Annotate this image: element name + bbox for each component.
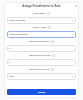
button[interactable]: Multiple Violations — [7, 31, 76, 38]
button[interactable]: 0 — [7, 59, 76, 66]
staticText: Submit — [38, 91, 46, 94]
button[interactable]: More info about Within Interval Value — [52, 54, 55, 57]
staticText: Within Interval Value — [29, 54, 51, 57]
button[interactable]: More info about Punishment — [47, 12, 50, 15]
staticText: Enforce After — [33, 26, 47, 29]
staticText: Assign Punishment to Rule — [22, 4, 61, 8]
button[interactable]: Notice Message — [7, 17, 76, 24]
button[interactable]: Submit — [7, 89, 76, 95]
staticText: Multiple Violations — [9, 33, 29, 36]
button[interactable]: 0 — [7, 45, 76, 52]
staticText: Punishment — [33, 12, 46, 15]
staticText: Notice Message — [9, 19, 26, 22]
button[interactable]: Days — [7, 73, 76, 80]
button[interactable]: More info about Minimum Violations — [51, 40, 54, 43]
staticText: Minimum Violations — [29, 40, 50, 43]
button[interactable]: Close dialog — [74, 4, 78, 8]
button[interactable]: More info about Within Interval Unit — [51, 68, 54, 71]
staticText: Within Interval Unit — [29, 68, 50, 71]
staticText: 0 — [9, 61, 11, 64]
staticText: 0 — [9, 47, 11, 50]
button[interactable]: More info about Enforce After — [48, 26, 51, 29]
staticText: Days — [9, 75, 14, 78]
